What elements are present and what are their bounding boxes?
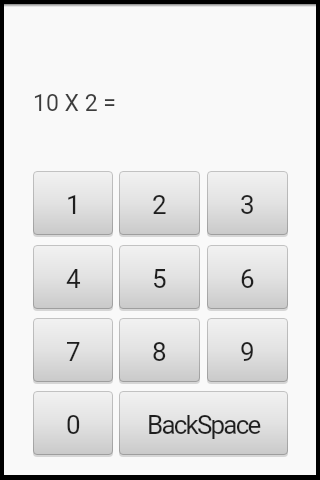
button[interactable]: 5 [119, 245, 200, 309]
button[interactable]: 3 [207, 171, 288, 235]
button[interactable]: BackSpace [119, 391, 288, 455]
staticText: 3 [240, 190, 255, 220]
staticText: 2 [152, 190, 167, 220]
button[interactable]: 4 [33, 245, 113, 309]
staticText: 9 [240, 337, 255, 367]
button[interactable]: 7 [33, 318, 113, 382]
staticText: BackSpace [147, 410, 260, 440]
staticText: 1 [66, 190, 81, 220]
staticText: 7 [66, 337, 81, 367]
staticText: 10 X 2 = [33, 90, 116, 117]
staticText: 0 [66, 410, 81, 440]
staticText: 4 [66, 264, 81, 294]
button[interactable]: 0 [33, 391, 113, 455]
staticText: 6 [240, 264, 255, 294]
staticText: 8 [152, 337, 167, 367]
button[interactable]: 6 [207, 245, 288, 309]
button[interactable]: 9 [207, 318, 288, 382]
button[interactable]: 2 [119, 171, 200, 235]
button[interactable]: 8 [119, 318, 200, 382]
button[interactable]: 1 [33, 171, 113, 235]
staticText: 5 [152, 264, 167, 294]
